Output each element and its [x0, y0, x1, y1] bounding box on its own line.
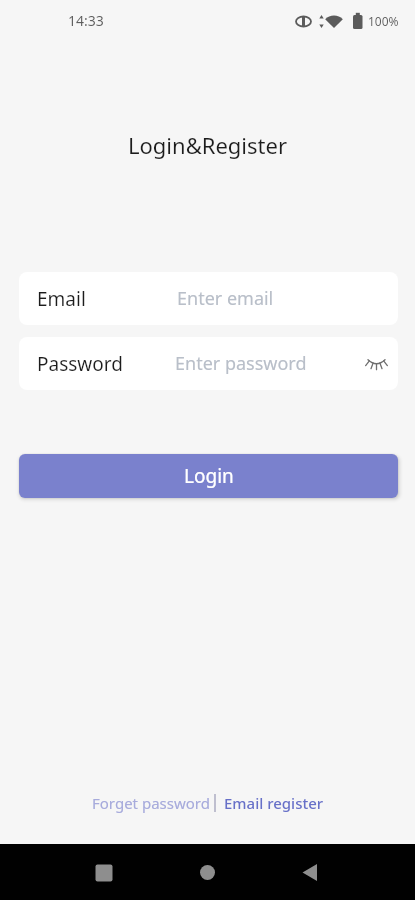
staticText: Password [37, 351, 123, 377]
button[interactable]: Email [19, 272, 398, 325]
staticText: Enter password [175, 351, 307, 376]
staticText: Email [37, 286, 86, 312]
button[interactable]: Login [19, 454, 398, 498]
button[interactable]: Email register [224, 793, 324, 813]
staticText: Login [184, 463, 234, 489]
staticText: Login&Register [128, 130, 288, 160]
button[interactable] [0, 844, 139, 900]
staticText: Forget password [92, 793, 210, 813]
staticText: Enter email [177, 286, 274, 311]
staticText: Email register [224, 793, 324, 813]
staticText: 14:33 [68, 11, 104, 30]
button[interactable]: Forget password [92, 793, 210, 813]
button[interactable] [277, 844, 415, 900]
button[interactable] [139, 844, 277, 900]
button[interactable]: Password [19, 337, 398, 390]
staticText: 100% [368, 13, 399, 29]
